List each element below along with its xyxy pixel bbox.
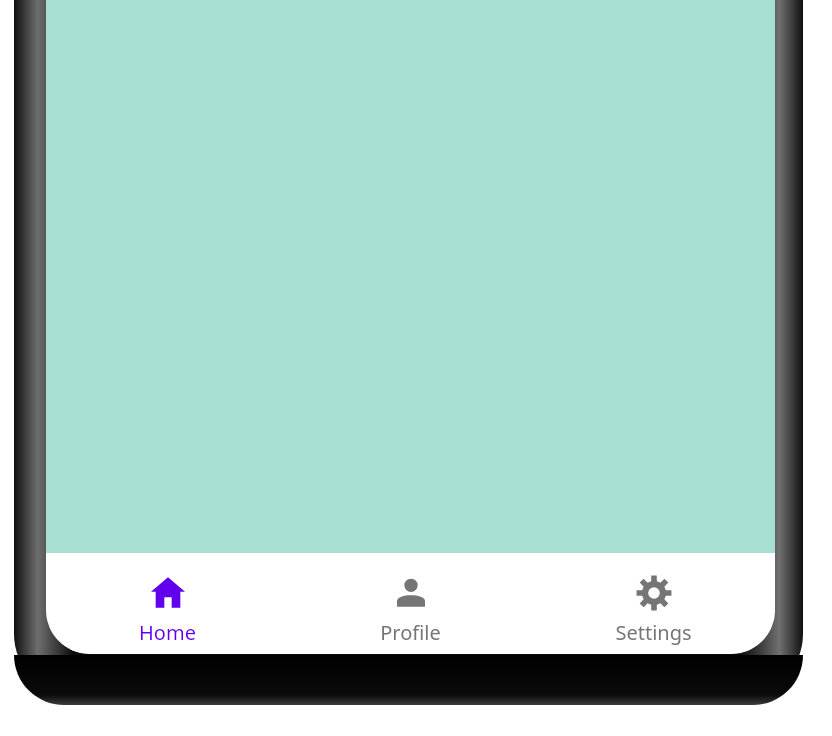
button[interactable]: Profile (289, 553, 532, 654)
other: Profile (391, 573, 431, 613)
button[interactable]: Settings (532, 553, 775, 654)
button[interactable]: Home (46, 553, 289, 654)
other: Home (148, 573, 188, 613)
staticText: Settings (615, 619, 692, 646)
staticText: Profile (380, 619, 441, 646)
other: Settings (634, 573, 674, 613)
staticText: Home (139, 619, 196, 646)
